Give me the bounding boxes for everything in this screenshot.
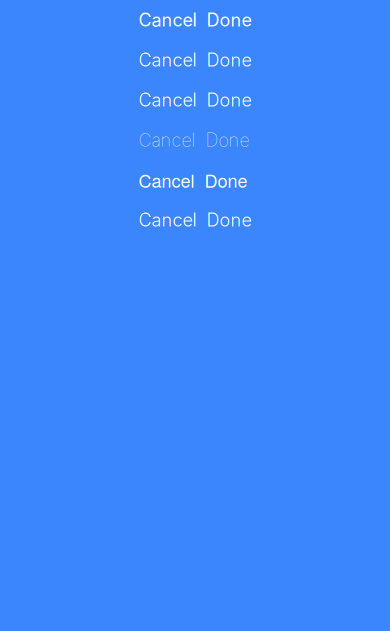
staticText: Cancel Done [138, 49, 251, 71]
staticText: Cancel Done [138, 9, 251, 31]
staticText: Cancel Done [138, 89, 251, 111]
staticText: Cancel Done [138, 209, 251, 231]
staticText: Cancel Done [138, 129, 249, 151]
staticText: Cancel Done [138, 167, 247, 193]
